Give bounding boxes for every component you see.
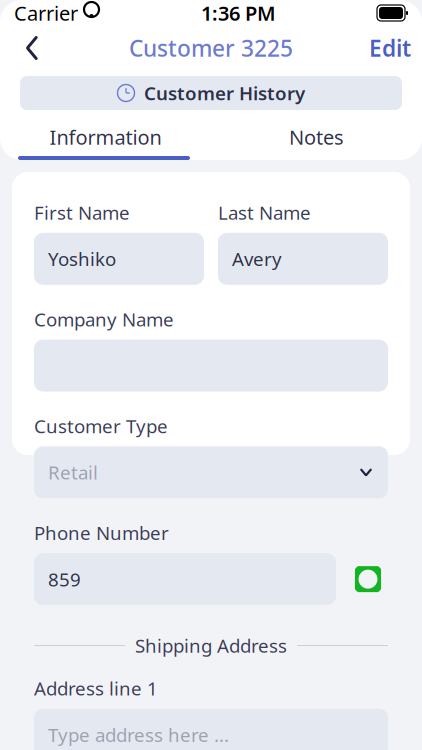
staticText: Customer History bbox=[144, 81, 305, 105]
staticText: First Name bbox=[34, 200, 130, 225]
button[interactable]: Edit bbox=[364, 26, 416, 70]
staticText: Avery bbox=[232, 246, 282, 271]
staticText: Shipping Address bbox=[135, 633, 287, 658]
staticText: Last Name bbox=[218, 200, 311, 225]
button[interactable]: Call bbox=[348, 557, 388, 601]
staticText: Customer Type bbox=[34, 414, 168, 438]
staticText: Notes bbox=[289, 124, 344, 150]
staticText: Company Name bbox=[34, 307, 174, 332]
staticText: Carrier bbox=[14, 0, 78, 26]
button[interactable]: Information bbox=[0, 118, 211, 156]
staticText: Yoshiko bbox=[48, 246, 116, 271]
staticText: Type address here ... bbox=[48, 722, 229, 747]
staticText: Edit bbox=[369, 33, 411, 63]
staticText: Information bbox=[49, 124, 161, 150]
button[interactable]: Retail bbox=[34, 446, 388, 498]
button[interactable]: Customer History bbox=[20, 76, 402, 110]
staticText: 1:36 PM bbox=[201, 0, 276, 26]
staticText: Customer 3225 bbox=[129, 33, 293, 63]
button[interactable]: Back bbox=[6, 26, 58, 70]
button[interactable]: Notes bbox=[211, 118, 422, 156]
staticText: Phone Number bbox=[34, 520, 169, 545]
staticText: 859 bbox=[48, 567, 81, 592]
staticText: Retail bbox=[48, 460, 98, 485]
staticText: Address line 1 bbox=[34, 676, 158, 701]
